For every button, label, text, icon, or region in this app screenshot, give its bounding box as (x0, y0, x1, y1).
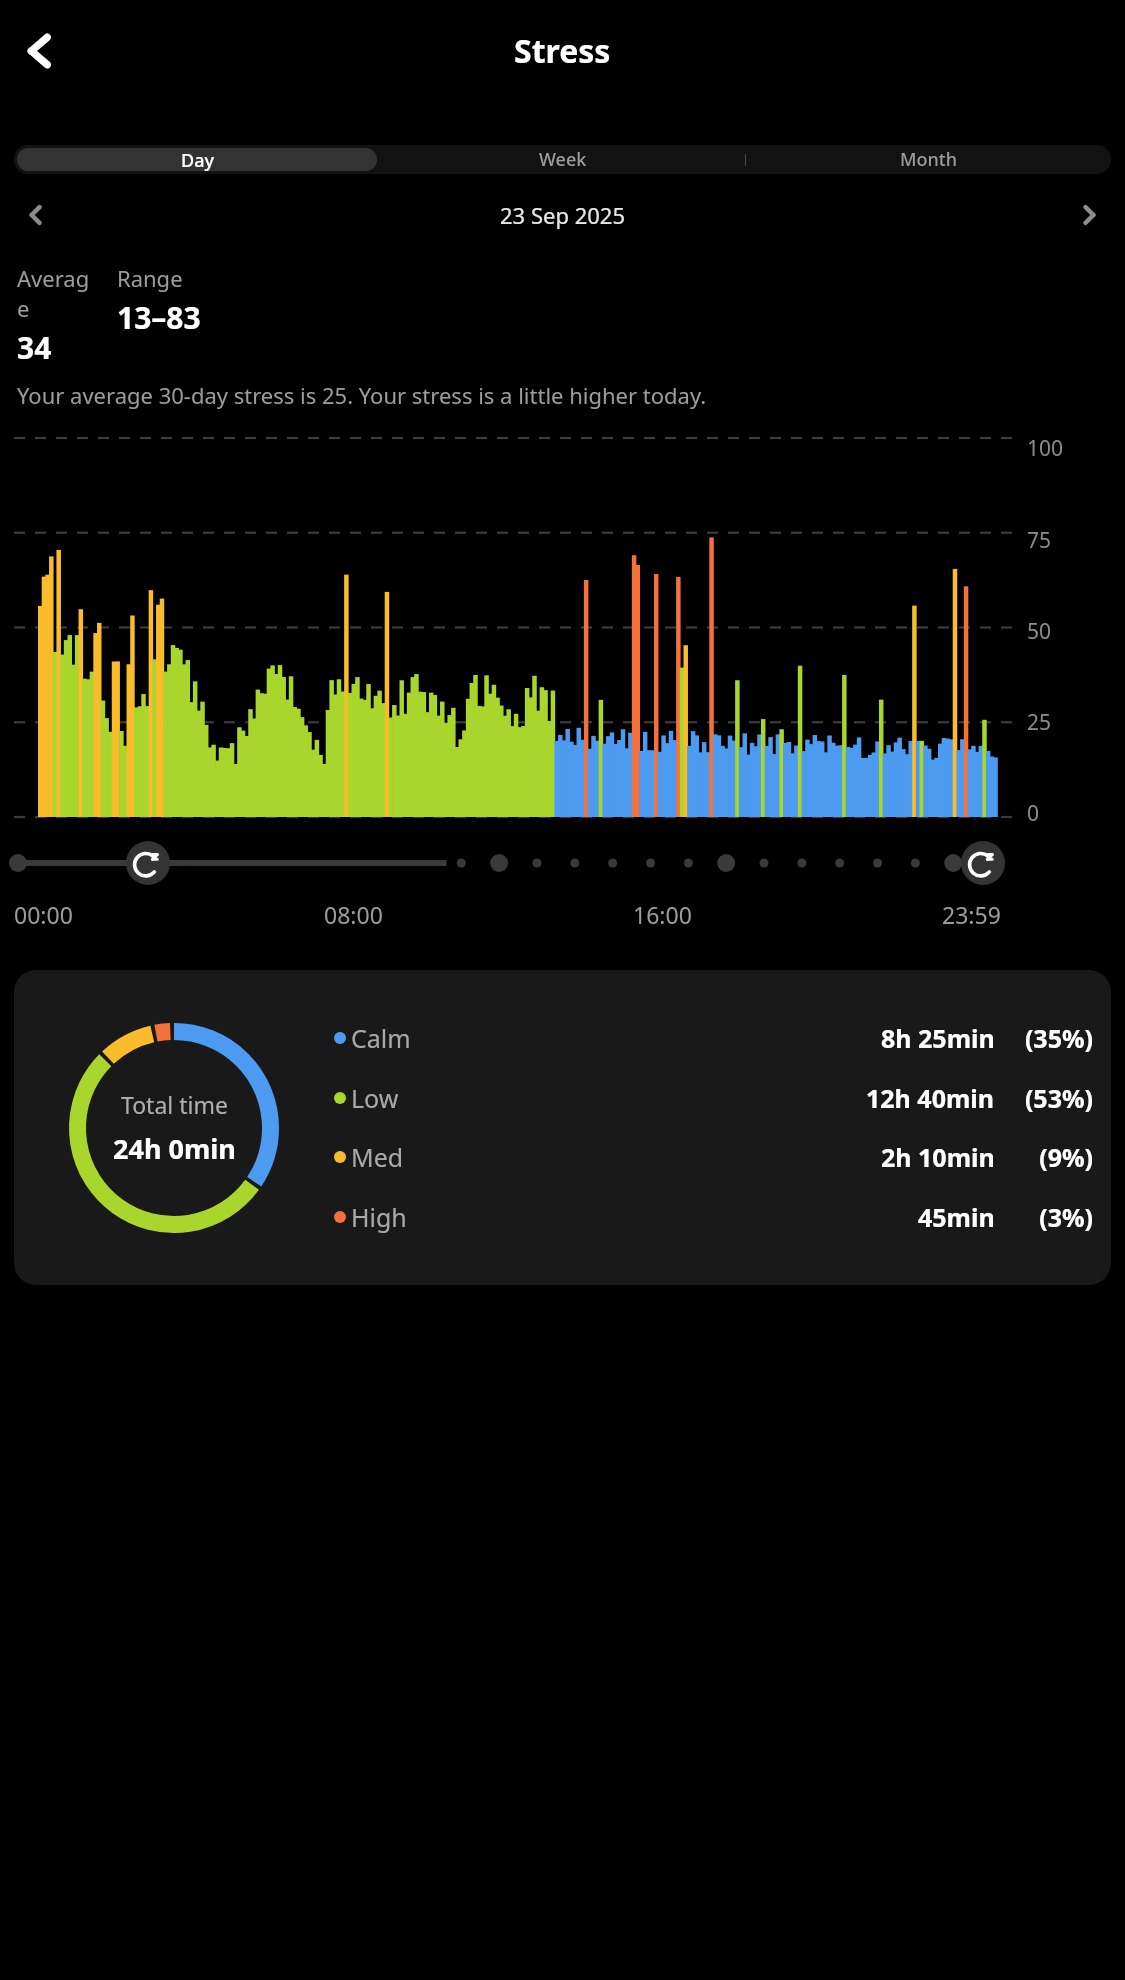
staticText: 23:59 (942, 899, 1001, 930)
staticText: Your average 30-day stress is 25. Your s… (17, 380, 707, 410)
staticText: 24h 0min (113, 1130, 236, 1167)
staticText: Month (900, 147, 957, 172)
staticText: 25 (1027, 708, 1052, 737)
button[interactable]: Back (6, 17, 74, 85)
staticText: (53%) (1007, 1081, 1093, 1115)
staticText: 00:00 (14, 899, 73, 930)
button[interactable]: Sleep (126, 841, 170, 885)
staticText: (35%) (1007, 1021, 1093, 1055)
staticText: 8h 25min (881, 1021, 995, 1055)
staticText: Average (17, 263, 99, 323)
button[interactable]: Next day (1067, 195, 1111, 235)
staticText: Low (351, 1081, 399, 1115)
staticText: 34 (17, 327, 52, 368)
button[interactable]: Low (334, 1081, 1093, 1115)
staticText: Day (181, 148, 214, 171)
button[interactable]: Calm (334, 1021, 1093, 1055)
staticText: High (351, 1200, 407, 1234)
button[interactable]: Day (17, 148, 377, 171)
staticText: Calm (351, 1021, 411, 1055)
staticText: 0 (1027, 799, 1040, 828)
button[interactable]: Med (334, 1140, 1093, 1174)
button[interactable]: Previous day (14, 195, 58, 235)
button[interactable]: Week (380, 145, 745, 174)
staticText: 13–83 (117, 297, 201, 338)
staticText: 08:00 (324, 899, 383, 930)
button[interactable]: Month (746, 145, 1111, 174)
button[interactable]: High (334, 1200, 1093, 1234)
button[interactable]: Sleep (961, 841, 1005, 885)
staticText: (9%) (1007, 1140, 1093, 1174)
staticText: 45min (918, 1200, 995, 1234)
staticText: 12h 40min (866, 1081, 995, 1115)
staticText: 2h 10min (881, 1140, 995, 1174)
staticText: 16:00 (633, 899, 692, 930)
staticText: Med (351, 1140, 404, 1174)
staticText: Week (539, 147, 587, 172)
staticText: 100 (1027, 434, 1064, 463)
staticText: Range (117, 263, 183, 293)
staticText: 23 Sep 2025 (58, 200, 1067, 230)
staticText: Total time (121, 1089, 228, 1120)
staticText: (3%) (1007, 1200, 1093, 1234)
button[interactable]: Total time (14, 970, 1111, 1285)
staticText: 50 (1027, 617, 1052, 646)
staticText: 75 (1027, 526, 1052, 555)
staticText: Stress (514, 29, 611, 73)
